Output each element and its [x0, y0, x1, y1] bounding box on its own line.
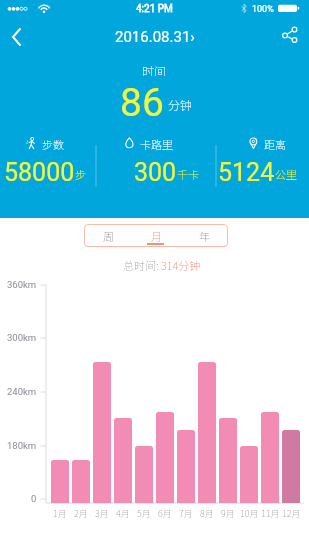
staticText: 6月: [158, 507, 172, 520]
staticText: 11月: [261, 507, 280, 520]
staticText: 58000: [4, 158, 75, 186]
staticText: 距离: [264, 136, 286, 152]
staticText: 卡路里: [140, 136, 173, 152]
staticText: 公里: [275, 166, 297, 182]
button[interactable]: 步数: [0, 134, 96, 154]
staticText: 240km: [7, 386, 37, 397]
staticText: 2月: [74, 507, 88, 520]
staticText: 10月: [240, 507, 259, 520]
staticText: 3月: [95, 507, 109, 520]
button[interactable]: 年: [180, 224, 228, 247]
staticText: 12月: [282, 507, 301, 520]
staticText: 314分钟: [161, 257, 201, 271]
staticText: 180km: [7, 440, 37, 451]
staticText: 月: [151, 228, 162, 244]
button[interactable]: 卡路里: [96, 134, 216, 154]
staticText: 300: [134, 158, 177, 186]
staticText: 5124: [218, 158, 275, 186]
staticText: 7月: [179, 507, 193, 520]
staticText: 5月: [137, 507, 151, 520]
staticText: 9月: [221, 507, 235, 520]
staticText: 1月: [53, 507, 67, 520]
staticText: 步数: [42, 136, 64, 152]
staticText: 100%: [252, 4, 274, 15]
button[interactable]: 月: [132, 224, 180, 247]
staticText: 4月: [116, 507, 130, 520]
staticText: 300km: [7, 332, 37, 343]
staticText: 4:21 PM: [136, 3, 173, 15]
staticText: 步: [75, 166, 86, 182]
button[interactable]: 周: [84, 224, 132, 247]
button[interactable]: [277, 24, 303, 50]
button[interactable]: 距离: [216, 134, 309, 154]
staticText: 千卡: [177, 166, 199, 182]
staticText: 周: [103, 228, 114, 244]
staticText: 86: [120, 80, 164, 120]
staticText: 8月: [200, 507, 214, 520]
button[interactable]: 2016.08.31›: [0, 26, 309, 48]
staticText: 总时间:: [123, 257, 161, 271]
staticText: 2016.08.31›: [115, 28, 195, 46]
staticText: 分钟: [168, 96, 193, 113]
staticText: 360km: [7, 279, 37, 290]
staticText: 年: [199, 228, 210, 244]
button[interactable]: [4, 24, 34, 50]
staticText: 时间: [142, 62, 167, 76]
staticText: 0: [31, 493, 37, 504]
